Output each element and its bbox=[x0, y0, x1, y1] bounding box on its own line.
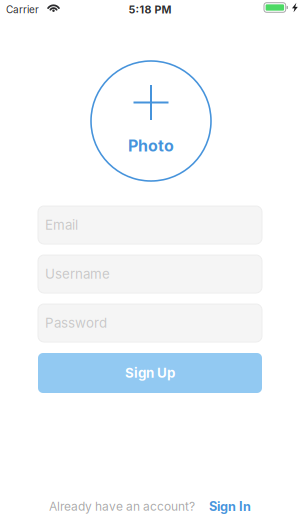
staticText: Sign In bbox=[209, 499, 251, 514]
staticText: Sign Up bbox=[125, 365, 175, 381]
button[interactable]: Password bbox=[38, 304, 262, 342]
button[interactable]: Username bbox=[38, 255, 262, 293]
button[interactable]: Email bbox=[38, 206, 262, 244]
button[interactable]: Sign In bbox=[209, 499, 251, 514]
staticText: Email bbox=[45, 217, 78, 233]
staticText: Password bbox=[45, 315, 107, 331]
staticText: Photo bbox=[128, 136, 174, 155]
button[interactable]: Sign Up bbox=[38, 353, 262, 393]
staticText: Already have an account? bbox=[49, 499, 195, 514]
button[interactable]: Add Photo bbox=[89, 61, 211, 181]
staticText: 5:18 PM bbox=[128, 3, 171, 16]
staticText: Carrier bbox=[6, 3, 39, 16]
staticText: Username bbox=[45, 266, 110, 282]
